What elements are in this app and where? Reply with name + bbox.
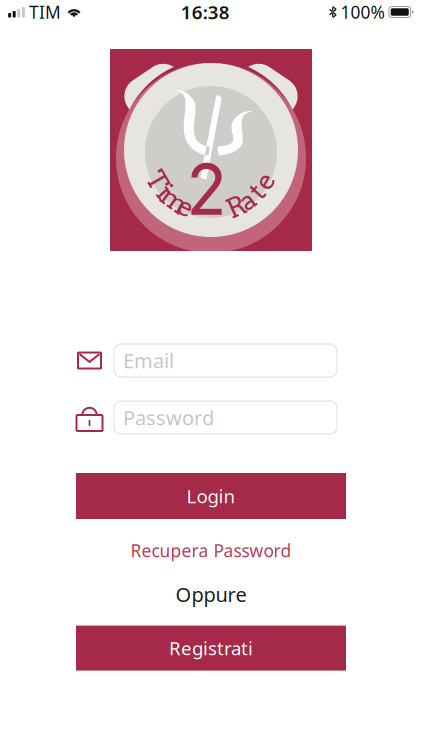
- staticText: i: [160, 175, 169, 208]
- staticText: Login: [186, 484, 235, 508]
- staticText: TIM: [29, 0, 61, 23]
- staticText: m: [161, 184, 188, 216]
- staticText: t: [252, 175, 262, 208]
- staticText: 100%: [340, 0, 384, 23]
- button[interactable]: Email: [114, 344, 337, 377]
- staticText: Registrati: [169, 636, 253, 660]
- staticText: e: [178, 190, 193, 223]
- staticText: Password: [123, 404, 214, 431]
- staticText: R: [227, 190, 246, 223]
- button[interactable]: Password: [114, 401, 337, 434]
- button[interactable]: Recupera Password: [124, 536, 297, 565]
- staticText: Email: [123, 347, 174, 374]
- staticText: 16:38: [181, 0, 230, 24]
- staticText: e: [257, 165, 272, 197]
- button[interactable]: Login: [76, 473, 346, 519]
- staticText: T: [148, 165, 167, 197]
- staticText: Oppure: [175, 581, 246, 608]
- staticText: 2: [188, 148, 225, 232]
- staticText: a: [240, 184, 255, 216]
- button[interactable]: Registrati: [76, 626, 346, 671]
- staticText: Recupera Password: [130, 539, 291, 562]
